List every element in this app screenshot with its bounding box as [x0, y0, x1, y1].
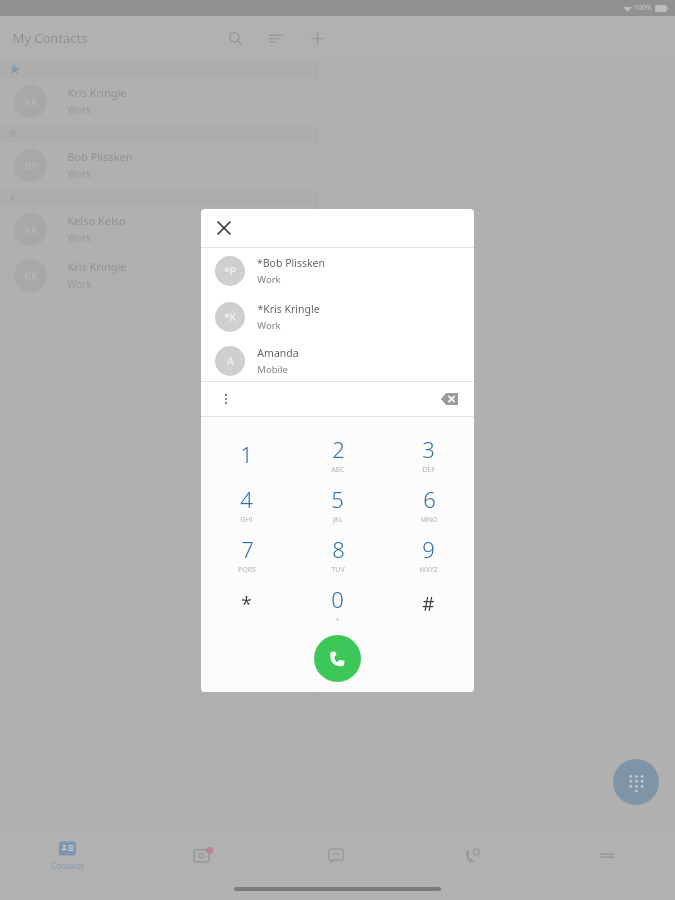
button[interactable]: KK: [0, 206, 317, 252]
staticText: Amanda: [257, 346, 299, 360]
staticText: +: [335, 615, 340, 625]
staticText: 6: [423, 484, 436, 514]
staticText: Work: [67, 231, 92, 245]
button[interactable]: Close: [212, 216, 236, 240]
staticText: JKL: [333, 515, 343, 525]
staticText: WXYZ: [419, 565, 438, 575]
staticText: 100%: [634, 3, 652, 13]
button[interactable]: 5: [292, 479, 383, 529]
staticText: *K: [224, 310, 236, 324]
staticText: 5: [331, 484, 344, 514]
staticText: 7: [241, 534, 254, 564]
button[interactable]: Search: [222, 25, 248, 51]
button[interactable]: *: [201, 579, 292, 629]
button[interactable]: Sort: [263, 25, 289, 51]
staticText: GHI: [240, 515, 253, 525]
staticText: ABC: [331, 465, 345, 475]
staticText: My Contacts: [12, 29, 88, 47]
staticText: Kris Kringle: [67, 85, 127, 100]
button[interactable]: KK: [0, 252, 317, 298]
staticText: Contacts: [51, 860, 84, 871]
staticText: Work: [67, 277, 92, 291]
staticText: DEF: [422, 465, 435, 475]
button[interactable]: 3: [383, 429, 474, 479]
staticText: 2: [332, 434, 345, 464]
button[interactable]: 1: [201, 429, 292, 479]
button[interactable]: *K: [201, 294, 474, 340]
staticText: PQRS: [238, 565, 256, 575]
staticText: 3: [422, 434, 435, 464]
staticText: Work: [67, 103, 92, 117]
staticText: Bob Plissken: [67, 149, 133, 164]
button[interactable]: 7: [201, 529, 292, 579]
staticText: Work: [67, 167, 92, 181]
staticText: 1: [240, 439, 253, 469]
button[interactable]: BP: [0, 142, 317, 188]
staticText: *Bob Plissken: [257, 256, 325, 270]
staticText: KK: [24, 268, 38, 283]
button[interactable]: 0: [292, 579, 383, 629]
staticText: *Kris Kringle: [257, 302, 320, 316]
staticText: KK: [24, 94, 38, 109]
button[interactable]: Contacts: [0, 832, 135, 878]
staticText: #: [422, 591, 435, 617]
staticText: *P: [224, 264, 236, 278]
staticText: A: [227, 354, 234, 368]
button[interactable]: Backspace: [436, 386, 462, 412]
staticText: KK: [24, 222, 38, 237]
button[interactable]: 6: [383, 479, 474, 529]
button[interactable]: Open dialpad: [613, 759, 659, 805]
button[interactable]: Add contact: [304, 25, 330, 51]
button[interactable]: A: [201, 340, 474, 381]
button[interactable]: *P: [201, 248, 474, 294]
staticText: Work: [257, 273, 281, 286]
staticText: Work: [257, 319, 281, 332]
button[interactable]: Call: [314, 635, 361, 682]
staticText: 9: [422, 534, 435, 564]
staticText: Kris Kringle: [67, 259, 127, 274]
staticText: 0: [331, 584, 344, 614]
button[interactable]: 4: [201, 479, 292, 529]
staticText: *: [241, 591, 252, 617]
button[interactable]: More options: [215, 388, 237, 410]
staticText: TUV: [331, 565, 345, 575]
button[interactable]: Recents: [135, 832, 270, 878]
staticText: K: [10, 191, 16, 203]
button[interactable]: 2: [292, 429, 383, 479]
button[interactable]: 9: [383, 529, 474, 579]
staticText: Mobile: [257, 363, 288, 376]
button[interactable]: 8: [292, 529, 383, 579]
staticText: BP: [24, 158, 38, 173]
staticText: MNO: [420, 515, 438, 525]
staticText: 4: [240, 484, 253, 514]
button[interactable]: KK: [0, 78, 317, 124]
staticText: 8: [332, 534, 345, 564]
staticText: Kelso Kelso: [67, 213, 126, 228]
button[interactable]: #: [383, 579, 474, 629]
staticText: B: [10, 127, 16, 139]
